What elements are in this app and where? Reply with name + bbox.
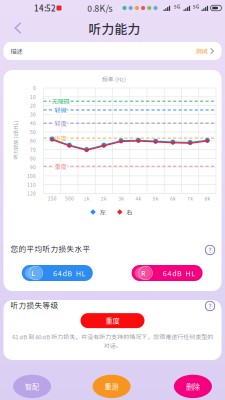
staticText: 1k — [84, 195, 90, 202]
staticText: 重度 — [54, 162, 66, 171]
staticText: 20 — [30, 102, 36, 109]
staticText: 智配 — [25, 381, 39, 391]
staticText: 重测 — [105, 381, 119, 391]
staticText: 64dB HL — [53, 268, 85, 278]
button[interactable]: Help — [205, 301, 215, 311]
staticText: 100 — [27, 172, 36, 179]
staticText: 轻度 — [54, 119, 66, 128]
staticText: ? — [208, 301, 211, 311]
button[interactable]: Back — [6, 14, 30, 41]
staticText: 80 — [30, 155, 36, 162]
staticText: 14:52 — [34, 2, 56, 14]
staticText: 120 — [27, 190, 36, 197]
staticText: 60 — [30, 137, 36, 144]
staticText: 删除 — [186, 381, 200, 391]
staticText: 左 — [99, 207, 105, 217]
staticText: 50 — [30, 128, 36, 135]
staticText: 听力损失 (dB HL) — [0, 136, 35, 144]
staticText: 10 — [30, 93, 36, 100]
button[interactable]: 删除 — [174, 375, 212, 398]
staticText: 40 — [30, 120, 36, 127]
staticText: 90 — [30, 164, 36, 171]
button[interactable]: R — [132, 265, 203, 281]
button[interactable]: 重度 — [80, 313, 144, 328]
staticText: 7k — [187, 195, 193, 202]
staticText: 4k — [135, 195, 141, 202]
staticText: L — [31, 268, 35, 278]
staticText: 轻微 — [54, 105, 66, 114]
button[interactable]: 重测 — [93, 375, 131, 398]
staticText: 61 dB 到 80 dB 听力损失，在没有听力支持的情况下，您很难进行任何类型… — [12, 332, 213, 350]
staticText: 64dB HL — [163, 268, 195, 278]
button[interactable]: L — [22, 265, 93, 281]
staticText: 描述 — [10, 46, 22, 56]
staticText: 8k — [204, 195, 210, 202]
staticText: 2k — [101, 195, 107, 202]
staticText: 5G — [193, 3, 199, 10]
staticText: 3k — [118, 195, 124, 202]
staticText: 重度 — [105, 315, 119, 326]
staticText: 听力损失等级 — [10, 299, 58, 310]
button[interactable]: Help — [205, 245, 215, 255]
staticText: 6k — [170, 195, 176, 202]
staticText: 无障碍 — [51, 97, 69, 106]
staticText: 听力能力 — [88, 19, 140, 38]
button[interactable]: 智配 — [13, 375, 51, 398]
staticText: 您的平均听力损失水平 — [10, 243, 90, 254]
staticText: 30 — [30, 111, 36, 118]
staticText: 110 — [27, 181, 36, 188]
staticText: 0 — [33, 84, 36, 91]
staticText: 频率 (Hz) — [102, 75, 126, 83]
staticText: ? — [208, 245, 211, 255]
staticText: 测试 — [195, 46, 207, 56]
button[interactable]: 描述 — [3, 42, 221, 60]
staticText: R — [141, 268, 145, 278]
staticText: 5G — [174, 3, 180, 10]
staticText: 0.8K/s — [87, 2, 112, 14]
staticText: 5k — [153, 195, 159, 202]
staticText: 右 — [126, 207, 132, 217]
staticText: 250 — [48, 195, 57, 202]
staticText: 70 — [30, 146, 36, 153]
staticText: 500 — [65, 195, 74, 202]
staticText: 中度 — [54, 134, 66, 143]
